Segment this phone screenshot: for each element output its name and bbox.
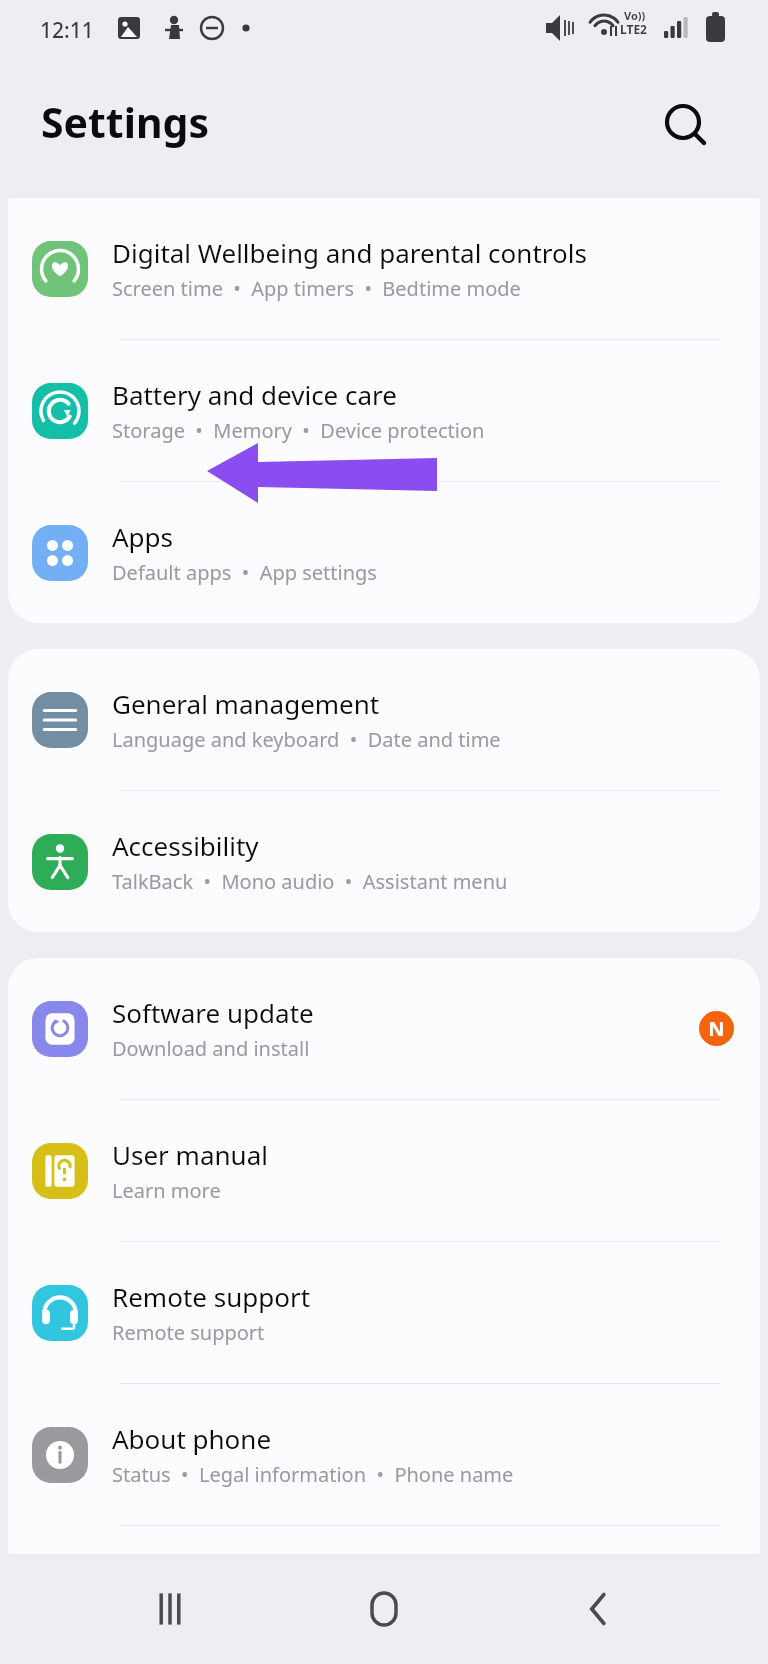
staticText: Storage • Memory • Device protection bbox=[112, 417, 485, 444]
button[interactable]: Developer options bbox=[8, 1526, 760, 1664]
staticText: Learn more bbox=[112, 1177, 221, 1204]
staticText: Status • Legal information • Phone name bbox=[112, 1461, 514, 1488]
staticText: TalkBack • Mono audio • Assistant menu bbox=[112, 868, 508, 895]
staticText: Remote support bbox=[112, 1319, 265, 1346]
staticText: LTE2 bbox=[620, 21, 647, 37]
staticText: Battery and device care bbox=[112, 377, 397, 412]
button[interactable]: Battery and device care bbox=[8, 340, 760, 481]
button[interactable]: About phone bbox=[8, 1384, 760, 1525]
staticText: Developer options bbox=[112, 1562, 336, 1597]
staticText: About phone bbox=[112, 1421, 272, 1456]
button[interactable]: Accessibility bbox=[8, 791, 760, 932]
staticText: Software update bbox=[112, 995, 314, 1030]
button[interactable]: Software update bbox=[8, 958, 760, 1099]
button[interactable]: Digital Wellbeing and parental controls bbox=[8, 198, 760, 339]
button[interactable]: Search bbox=[660, 99, 712, 151]
staticText: Apps bbox=[112, 519, 174, 554]
staticText: Download and install bbox=[112, 1035, 310, 1062]
staticText: Vo)) bbox=[624, 8, 646, 23]
staticText: General management bbox=[112, 686, 380, 721]
staticText: User manual bbox=[112, 1137, 268, 1172]
staticText: Screen time • App timers • Bedtime mode bbox=[112, 275, 521, 302]
staticText: Default apps • App settings bbox=[112, 559, 377, 586]
button[interactable]: Back bbox=[554, 1564, 644, 1654]
staticText: Remote support bbox=[112, 1279, 311, 1314]
button[interactable]: General management bbox=[8, 649, 760, 790]
button[interactable]: Home bbox=[339, 1564, 429, 1654]
button[interactable]: User manual bbox=[8, 1100, 760, 1241]
staticText: Accessibility bbox=[112, 828, 259, 863]
staticText: Language and keyboard • Date and time bbox=[112, 726, 501, 753]
staticText: 12:11 bbox=[40, 16, 94, 45]
button[interactable]: Remote support bbox=[8, 1242, 760, 1383]
staticText: Settings bbox=[41, 94, 210, 150]
staticText: Developer options bbox=[112, 1602, 285, 1629]
staticText: Digital Wellbeing and parental controls bbox=[112, 235, 587, 270]
button[interactable]: Apps bbox=[8, 482, 760, 623]
staticText: N bbox=[708, 1015, 725, 1042]
button[interactable]: Recents bbox=[125, 1564, 215, 1654]
